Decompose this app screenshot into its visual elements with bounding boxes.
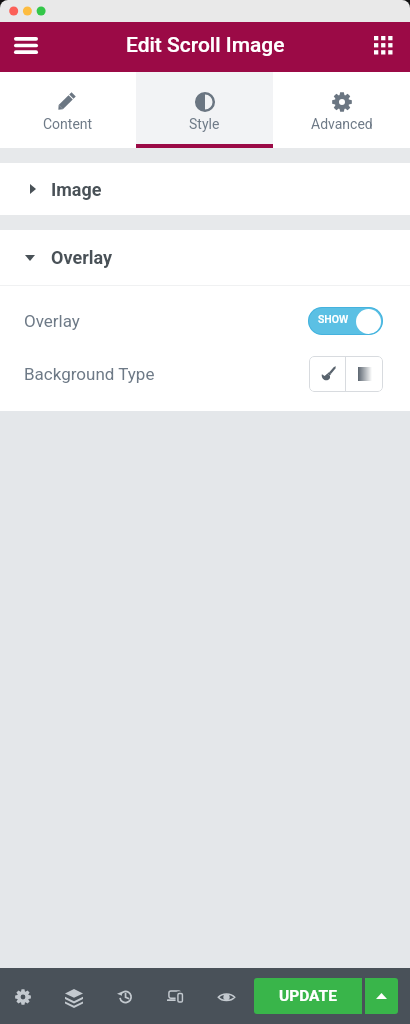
button[interactable]: Settings	[0, 968, 48, 1024]
staticText: Background Type	[24, 364, 155, 384]
staticText: Overlay	[24, 311, 80, 331]
button[interactable]: Preview	[201, 968, 252, 1024]
staticText: Content	[43, 116, 93, 132]
button[interactable]: Apps grid	[360, 22, 410, 72]
staticText: Style	[189, 116, 220, 132]
button[interactable]: Image	[0, 163, 410, 215]
button[interactable]: Overlay	[0, 230, 410, 285]
button[interactable]: History	[99, 968, 150, 1024]
staticText: UPDATE	[279, 987, 337, 1005]
button[interactable]: Classic background	[309, 356, 345, 392]
button[interactable]: Gradient background	[346, 356, 383, 392]
button[interactable]: Advanced	[273, 72, 410, 148]
button[interactable]: SHOW	[308, 307, 383, 335]
button[interactable]: Navigator	[48, 968, 99, 1024]
staticText: Overlay	[51, 247, 113, 268]
button[interactable]: Responsive mode	[150, 968, 201, 1024]
button[interactable]: UPDATE	[254, 978, 362, 1014]
button[interactable]: Menu	[0, 22, 50, 72]
staticText: Advanced	[311, 116, 373, 132]
button[interactable]: Content	[0, 72, 136, 148]
button[interactable]: Style	[136, 72, 273, 148]
staticText: Image	[51, 179, 102, 200]
staticText: SHOW	[318, 313, 349, 325]
staticText: Edit Scroll Image	[126, 33, 285, 58]
button[interactable]: More options	[365, 978, 398, 1014]
